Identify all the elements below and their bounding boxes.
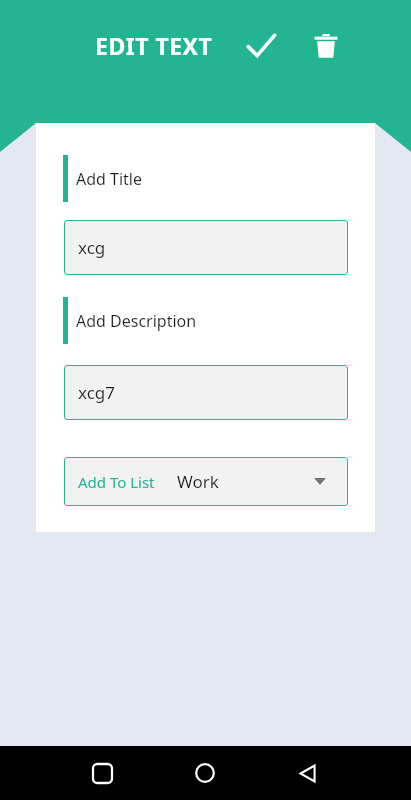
button[interactable]: Back (288, 753, 328, 793)
staticText: Add To List (78, 472, 155, 492)
button[interactable]: Delete (306, 26, 346, 66)
staticText: xcg (78, 236, 106, 259)
staticText: Add Title (76, 168, 143, 190)
button[interactable]: Save (241, 26, 281, 66)
button[interactable]: xcg (64, 220, 348, 275)
button[interactable]: xcg7 (64, 365, 348, 420)
button[interactable]: EDIT TEXT (95, 30, 213, 61)
staticText: Add Description (76, 310, 197, 332)
staticText: Work (177, 470, 219, 493)
button[interactable]: Add To List (64, 457, 348, 506)
button[interactable]: Add Title (63, 155, 143, 202)
button[interactable]: Add Description (63, 297, 197, 344)
button[interactable]: Recent apps (82, 753, 122, 793)
button[interactable]: Home (185, 753, 225, 793)
staticText: xcg7 (78, 381, 115, 404)
